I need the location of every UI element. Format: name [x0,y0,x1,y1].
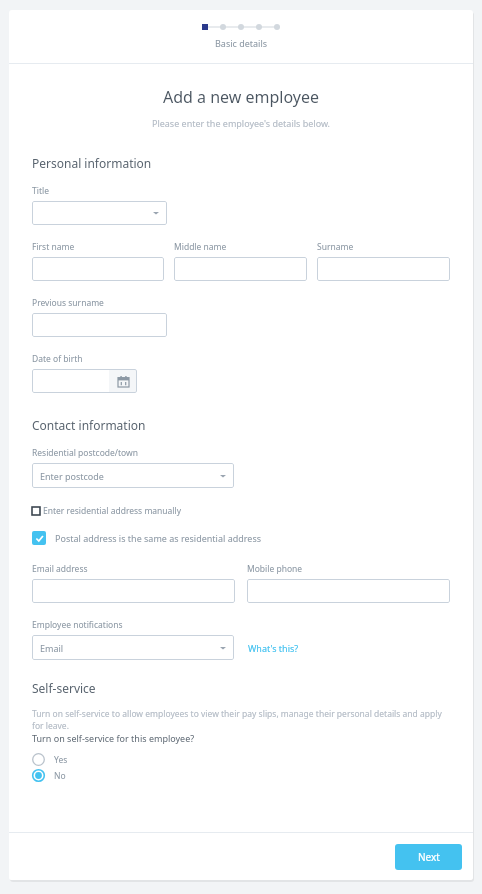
button[interactable]: Next [395,844,462,870]
button[interactable]: Yes [32,753,68,766]
button[interactable] [317,257,450,281]
staticText: Residential postcode/town [32,447,138,459]
button[interactable]: Pick date [32,369,137,393]
button[interactable]: Enter postcode [32,463,234,488]
staticText: Contact information [32,417,146,433]
staticText: Personal information [32,155,152,171]
staticText: Mobile phone [247,563,303,575]
staticText: Surname [317,241,354,253]
button[interactable] [32,313,167,337]
staticText: Title [32,185,49,197]
button[interactable] [32,201,167,225]
staticText: Enter residential address manually [43,505,182,517]
button[interactable]: Enter residential address manually [32,505,182,517]
button[interactable] [32,579,235,603]
staticText: Previous surname [32,297,104,309]
staticText: First name [32,241,75,253]
staticText: Self-service [32,680,96,696]
staticText: Employee notifications [32,619,123,631]
button[interactable] [247,579,450,603]
button[interactable] [32,257,164,281]
staticText: Email [40,642,64,654]
staticText: Yes [54,754,68,766]
staticText: Turn on self-service for this employee? [32,732,195,744]
staticText: Add a new employee [32,86,450,108]
staticText: Date of birth [32,353,83,365]
other: Pick date [109,369,137,393]
button[interactable]: No [32,769,66,782]
staticText: Next [418,850,440,864]
button[interactable] [174,257,307,281]
staticText: Basic details [215,37,268,49]
staticText: No [54,770,66,782]
button[interactable]: Email [32,635,234,660]
staticText: Please enter the employee's details belo… [32,117,450,129]
staticText: Middle name [174,241,227,253]
button[interactable]: Postal address is the same as residentia… [32,531,262,545]
staticText: Enter postcode [40,470,104,482]
staticText: Email address [32,563,88,575]
button[interactable]: What's this? [248,642,299,654]
staticText: Turn on self-service to allow employees … [32,708,450,732]
staticText: What's this? [248,642,299,654]
staticText: Postal address is the same as residentia… [55,532,262,544]
